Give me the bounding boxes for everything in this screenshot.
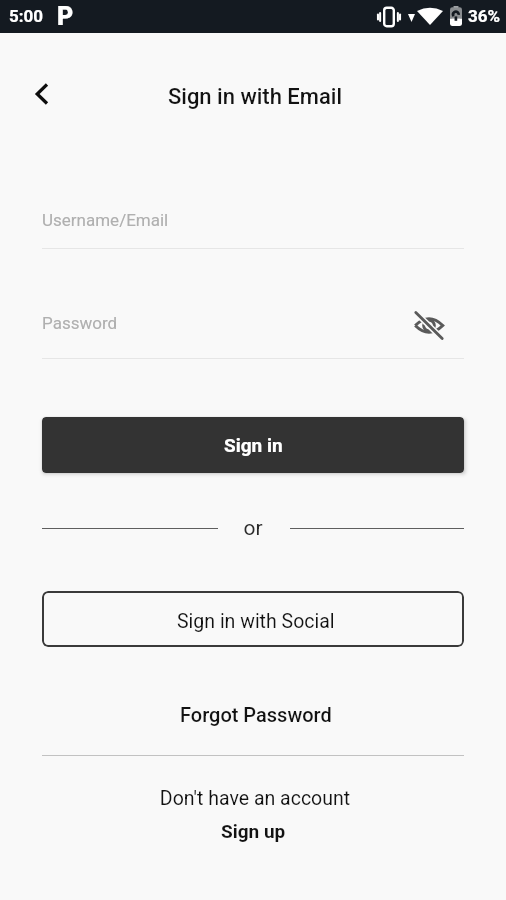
- button[interactable]: Show password: [409, 305, 449, 345]
- staticText: Sign in with Email: [2, 84, 506, 110]
- staticText: 5:00: [9, 6, 44, 26]
- staticText: Sign in with Social: [177, 610, 335, 633]
- button[interactable]: Forgot Password: [0, 692, 506, 736]
- staticText: Forgot Password: [180, 703, 332, 726]
- button[interactable]: Back: [19, 71, 65, 117]
- staticText: Username/Email: [42, 210, 169, 230]
- staticText: Password: [42, 313, 118, 333]
- staticText: Sign in: [224, 434, 283, 456]
- button[interactable]: Sign up: [0, 816, 506, 846]
- staticText: P: [57, 2, 74, 31]
- button[interactable]: Sign in: [42, 417, 464, 473]
- staticText: 36%: [468, 6, 501, 26]
- staticText: or: [0, 516, 506, 541]
- staticText: Don't have an account: [2, 787, 506, 810]
- button[interactable]: Sign in with Social: [42, 591, 464, 647]
- staticText: Sign up: [221, 820, 286, 842]
